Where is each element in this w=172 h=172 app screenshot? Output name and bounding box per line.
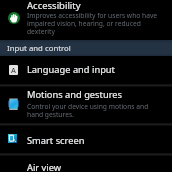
staticText: Air view <box>27 161 62 172</box>
staticText: Motions and gestures <box>27 88 123 101</box>
staticText: Accessibility <box>27 0 81 12</box>
staticText: Language and input <box>27 63 115 76</box>
button[interactable]: Smart screen <box>0 125 172 154</box>
button[interactable]: A <box>0 56 172 85</box>
staticText: A <box>11 65 16 75</box>
staticText: Input and control <box>7 43 71 54</box>
button[interactable]: Motions and gestures <box>0 86 172 124</box>
button[interactable]: Accessibility <box>0 0 172 40</box>
staticText: Smart screen <box>27 134 85 147</box>
button[interactable]: Air view <box>0 155 172 172</box>
staticText: Control your device using motions and ha… <box>27 102 155 119</box>
staticText: Improves accessibility for users who hav… <box>27 11 165 36</box>
